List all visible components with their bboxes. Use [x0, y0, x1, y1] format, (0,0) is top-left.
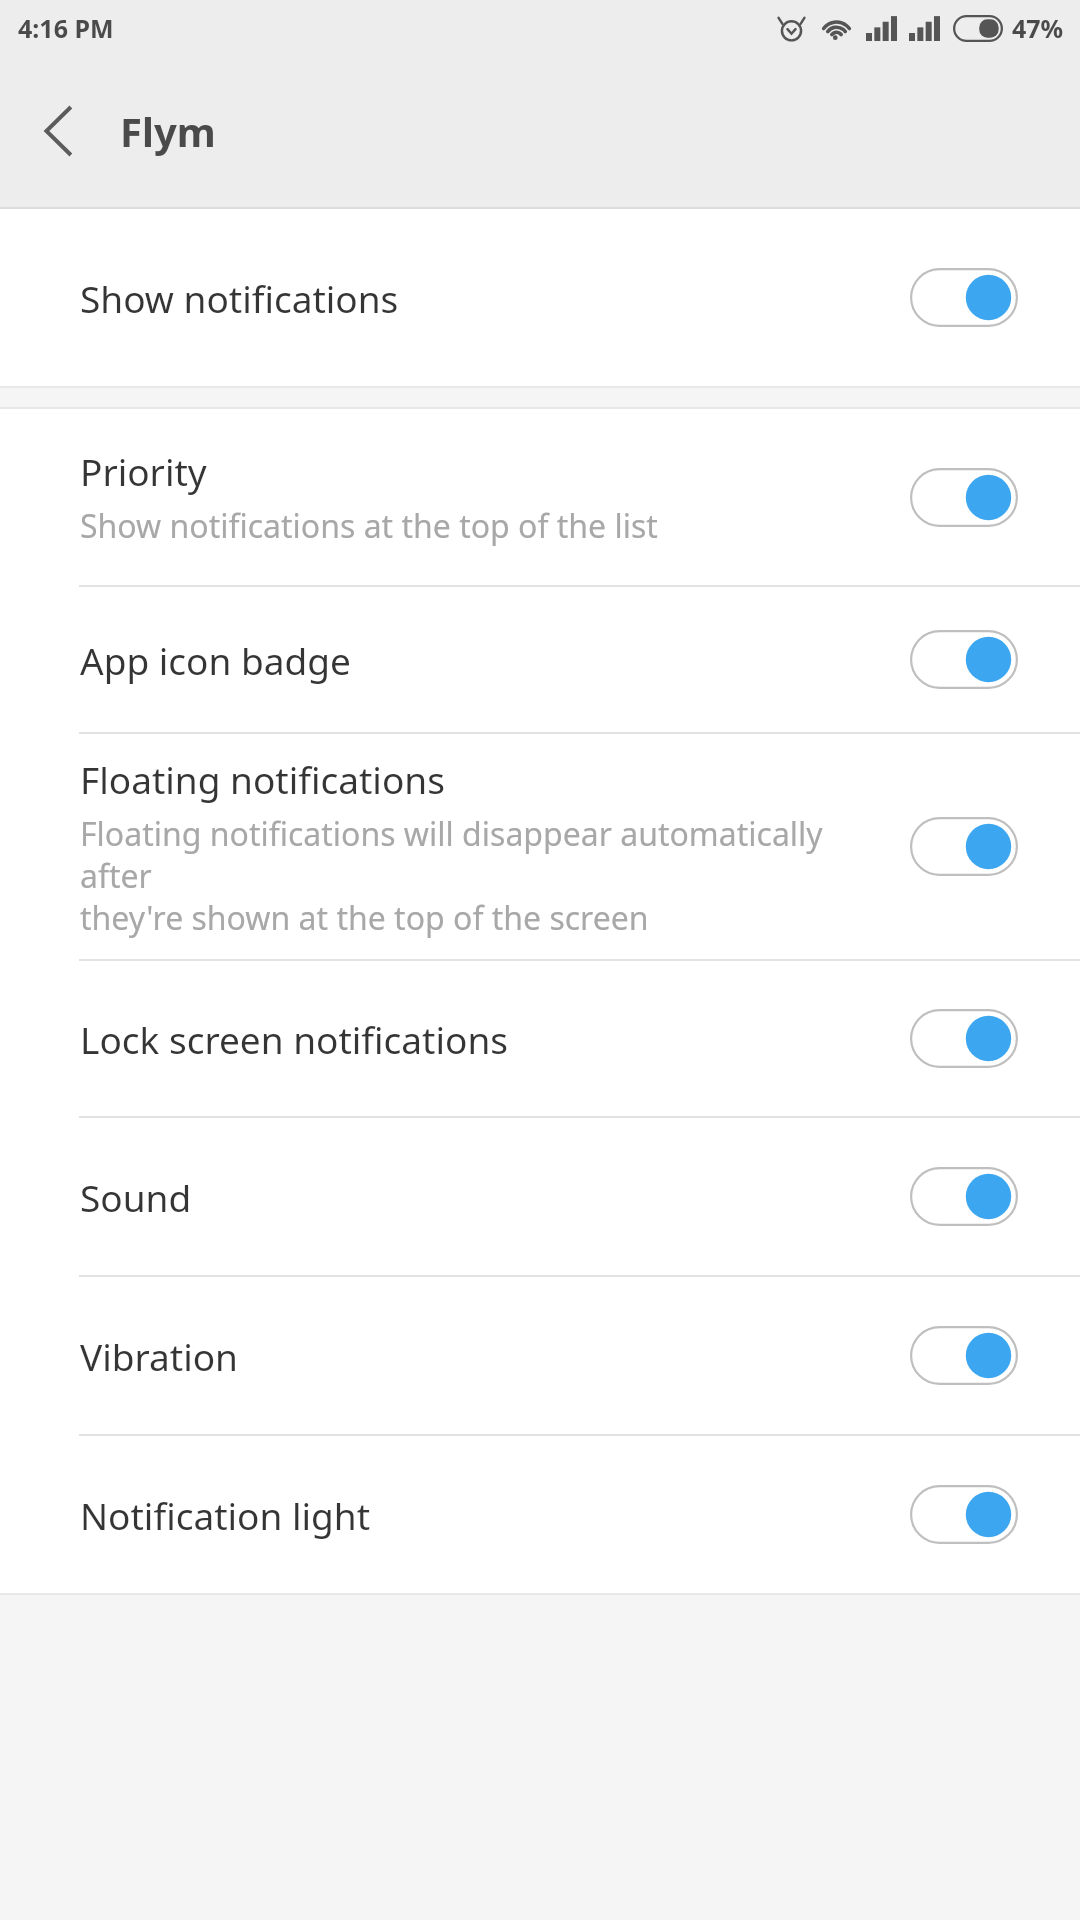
staticText: 4:16 PM — [18, 11, 114, 45]
button[interactable]: Toggle — [910, 630, 1018, 689]
button[interactable]: Floating notifications — [0, 734, 1080, 959]
staticText: 47% — [1012, 11, 1064, 45]
staticText: Lock screen notifications — [80, 1014, 508, 1064]
button[interactable]: Toggle — [910, 817, 1018, 876]
button[interactable]: Toggle — [910, 1009, 1018, 1068]
staticText: Sound — [80, 1172, 192, 1222]
button[interactable]: Toggle — [910, 468, 1018, 527]
staticText: App icon badge — [80, 635, 351, 685]
button[interactable]: Toggle — [910, 1167, 1018, 1226]
staticText: Priority — [80, 446, 207, 496]
button[interactable]: Lock screen notifications — [0, 961, 1080, 1116]
staticText: Floating notifications will disappear au… — [80, 812, 896, 939]
button[interactable]: Sound — [0, 1118, 1080, 1275]
button[interactable]: App icon badge — [0, 587, 1080, 732]
staticText: Flym — [120, 104, 216, 158]
button[interactable]: Vibration — [0, 1277, 1080, 1434]
staticText: Vibration — [80, 1331, 238, 1381]
button[interactable]: Priority — [0, 409, 1080, 585]
staticText: Show notifications — [80, 273, 399, 323]
button[interactable]: Show notifications — [0, 209, 1080, 386]
staticText: Floating notifications — [80, 754, 445, 804]
button[interactable]: Toggle — [910, 268, 1018, 327]
button[interactable]: Notification light — [0, 1436, 1080, 1593]
staticText: Show notifications at the top of the lis… — [80, 504, 658, 548]
staticText: Notification light — [80, 1490, 371, 1540]
button[interactable]: Back — [12, 83, 108, 179]
button[interactable]: Toggle — [910, 1485, 1018, 1544]
button[interactable]: Toggle — [910, 1326, 1018, 1385]
